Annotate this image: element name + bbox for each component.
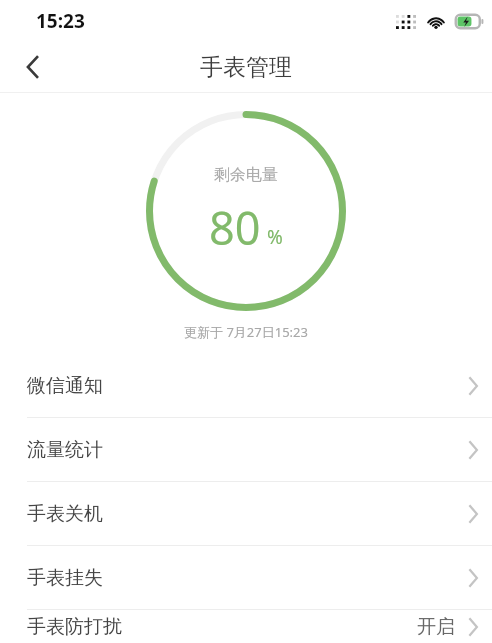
staticText: 开启 [417, 615, 455, 639]
button[interactable]: 手表挂失 [0, 546, 492, 610]
staticText: 15:23 [36, 8, 85, 34]
staticText: % [267, 224, 283, 250]
staticText: 更新于 7月27日15:23 [0, 323, 492, 341]
button[interactable]: Back [10, 45, 54, 89]
staticText: 手表管理 [200, 53, 292, 82]
button[interactable]: 微信通知 [0, 354, 492, 418]
button[interactable]: 手表关机 [0, 482, 492, 546]
button[interactable]: 手表防打扰 [0, 610, 492, 643]
staticText: 80 [209, 197, 261, 258]
staticText: 手表防打扰 [27, 615, 122, 639]
staticText: 手表挂失 [27, 566, 103, 590]
staticText: 手表关机 [27, 502, 103, 526]
staticText: 微信通知 [27, 374, 103, 398]
staticText: 剩余电量 [214, 165, 278, 185]
staticText: 流量统计 [27, 438, 103, 462]
button[interactable]: 流量统计 [0, 418, 492, 482]
